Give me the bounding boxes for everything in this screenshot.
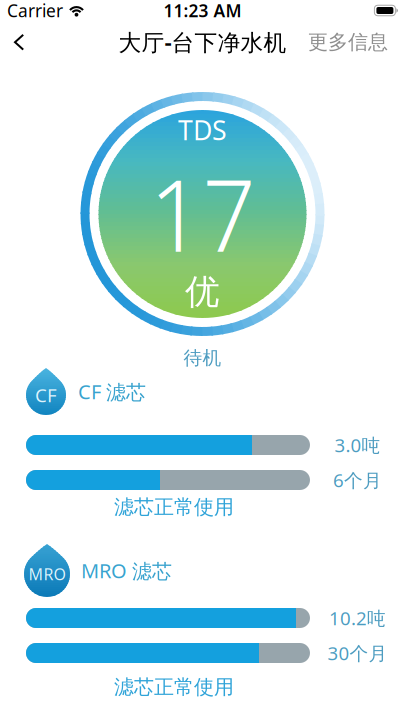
staticText: 17 xyxy=(145,147,259,279)
staticText: 30个月 xyxy=(327,641,387,665)
staticText: 滤芯正常使用 xyxy=(114,495,234,519)
staticText: Carrier xyxy=(7,0,63,22)
staticText: 优 xyxy=(185,271,220,313)
button[interactable]: 更多信息 xyxy=(308,32,405,52)
staticText: 11:23 AM xyxy=(163,0,241,22)
staticText: 大厅-台下净水机 xyxy=(118,27,286,57)
staticText: 更多信息 xyxy=(308,30,388,54)
staticText: TDS xyxy=(178,112,227,148)
staticText: CF xyxy=(35,383,57,407)
staticText: 10.2吨 xyxy=(329,606,386,630)
staticText: 滤芯正常使用 xyxy=(114,675,234,699)
staticText: 6个月 xyxy=(333,468,382,492)
button[interactable]: Back xyxy=(0,34,34,50)
staticText: MRO xyxy=(28,563,65,585)
staticText: 待机 xyxy=(183,346,221,369)
staticText: MRO 滤芯 xyxy=(81,557,172,584)
staticText: 3.0吨 xyxy=(334,433,380,457)
staticText: CF 滤芯 xyxy=(78,378,146,405)
